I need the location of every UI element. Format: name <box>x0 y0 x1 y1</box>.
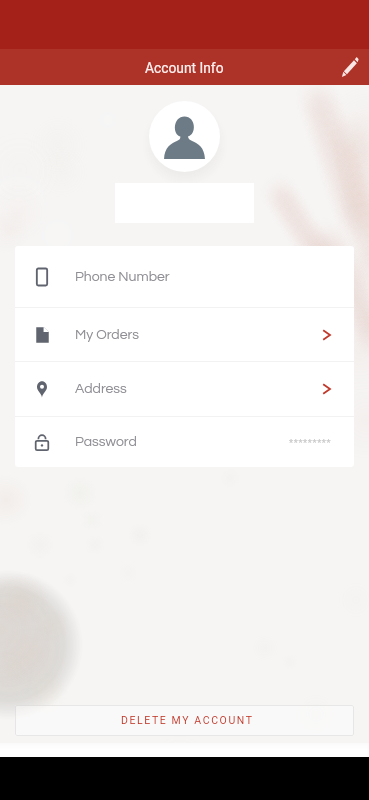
staticText: Account Info <box>145 60 224 76</box>
staticText: ********* <box>289 437 332 448</box>
staticText: Address <box>75 382 127 396</box>
button[interactable]: Edit profile <box>335 52 365 82</box>
button[interactable]: DELETE MY ACCOUNT <box>15 705 354 736</box>
button[interactable]: Password <box>15 417 354 467</box>
button[interactable]: My Orders <box>15 308 354 361</box>
button[interactable]: Address <box>15 362 354 416</box>
staticText: Phone Number <box>75 270 170 284</box>
staticText: My Orders <box>75 328 140 342</box>
staticText: Password <box>75 435 137 449</box>
staticText: DELETE MY ACCOUNT <box>121 714 254 726</box>
button[interactable]: Phone Number <box>15 246 354 307</box>
